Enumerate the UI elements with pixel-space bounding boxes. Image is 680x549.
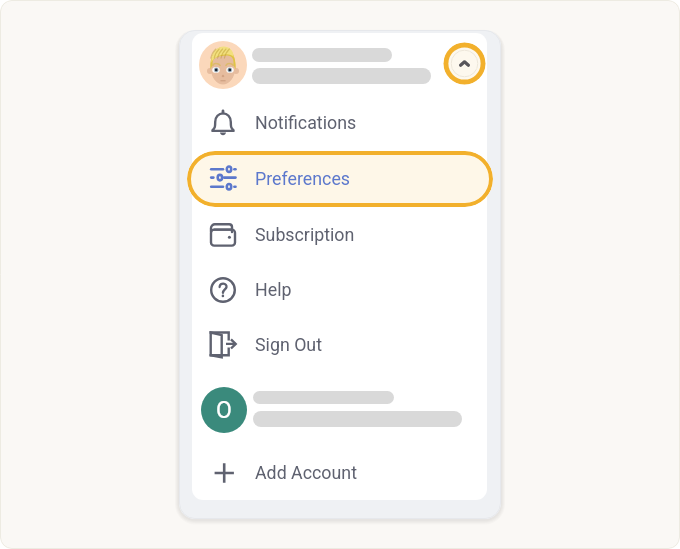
button[interactable]: Help: [192, 262, 487, 317]
button[interactable]: [192, 33, 487, 96]
button[interactable]: O: [192, 378, 487, 440]
staticText: Notifications: [255, 112, 357, 133]
staticText: Preferences: [255, 168, 351, 189]
staticText: Sign Out: [255, 334, 323, 355]
button[interactable]: Notifications: [192, 95, 487, 150]
staticText: Add Account: [255, 462, 357, 483]
staticText: O: [216, 397, 232, 424]
button[interactable]: Add Account: [192, 445, 487, 500]
button[interactable]: Sign Out: [192, 317, 487, 372]
button[interactable]: Collapse account list: [443, 42, 486, 85]
button[interactable]: Preferences: [187, 151, 493, 207]
button[interactable]: Subscription: [192, 207, 487, 262]
staticText: Help: [255, 279, 292, 300]
staticText: Subscription: [255, 224, 355, 245]
